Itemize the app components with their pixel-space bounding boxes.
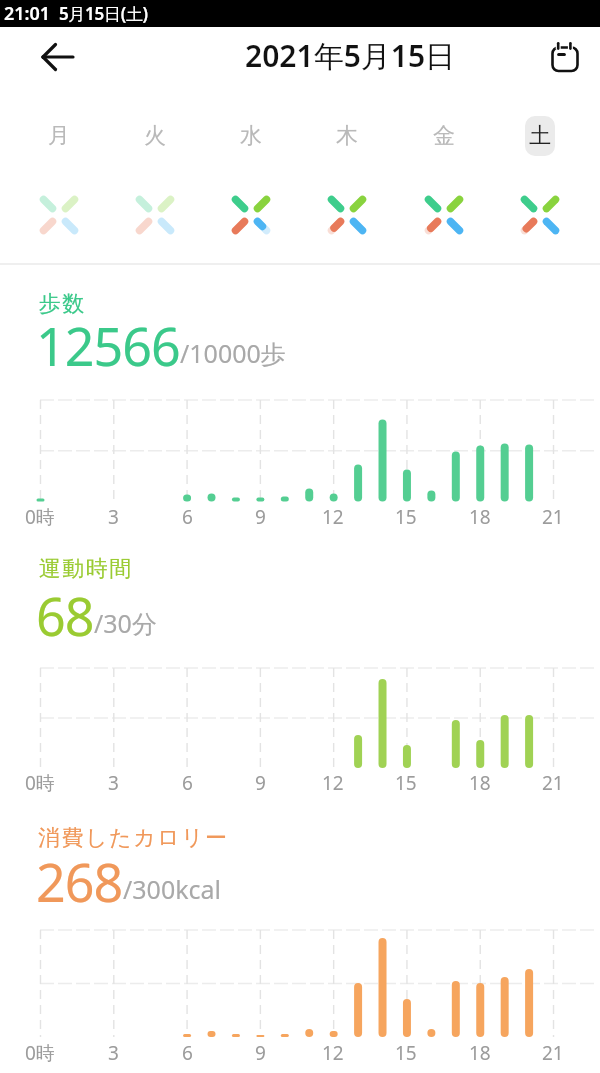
staticText: /30分 — [94, 606, 157, 640]
staticText: /300kcal — [123, 872, 222, 906]
staticText: 268 — [36, 846, 123, 917]
staticText: 0時 — [25, 770, 55, 796]
staticText: 12 — [322, 504, 344, 530]
staticText: 21:01 — [4, 1, 51, 26]
staticText: 15 — [395, 1040, 417, 1066]
button[interactable]: 木 — [299, 104, 395, 246]
staticText: 12 — [322, 770, 344, 796]
staticText: 2021年5月15日 — [245, 35, 456, 76]
button[interactable]: 月 — [11, 104, 107, 246]
staticText: 運動時間 — [38, 555, 132, 583]
staticText: 18 — [469, 504, 491, 530]
staticText: 18 — [469, 1040, 491, 1066]
staticText: 18 — [469, 770, 491, 796]
staticText: 3 — [108, 504, 119, 530]
button[interactable]: 火 — [107, 104, 203, 246]
staticText: 21 — [542, 504, 564, 530]
button[interactable]: 金 — [396, 104, 492, 246]
staticText: 水 — [240, 122, 262, 150]
staticText: 月 — [48, 122, 70, 150]
staticText: 15 — [395, 770, 417, 796]
staticText: 21 — [542, 770, 564, 796]
staticText: 土 — [529, 122, 551, 150]
staticText: 68 — [36, 580, 94, 651]
staticText: 歩数 — [38, 290, 85, 318]
staticText: 12566 — [36, 310, 180, 381]
staticText: 5月15日(土) — [59, 2, 148, 25]
staticText: 6 — [182, 770, 193, 796]
button[interactable]: 水 — [203, 104, 299, 246]
staticText: 21 — [542, 1040, 564, 1066]
staticText: 6 — [182, 1040, 193, 1066]
staticText: 3 — [108, 770, 119, 796]
staticText: 0時 — [25, 504, 55, 530]
staticText: 木 — [336, 122, 358, 150]
staticText: 火 — [144, 122, 166, 150]
staticText: 9 — [255, 770, 266, 796]
staticText: /10000歩 — [180, 336, 286, 370]
button[interactable] — [544, 36, 586, 78]
staticText: 9 — [255, 504, 266, 530]
staticText: 金 — [433, 122, 455, 150]
staticText: 15 — [395, 504, 417, 530]
button[interactable]: 土 — [492, 104, 588, 246]
staticText: 6 — [182, 504, 193, 530]
button[interactable] — [34, 37, 82, 77]
staticText: 12 — [322, 1040, 344, 1066]
staticText: 消費したカロリー — [38, 824, 229, 852]
staticText: 0時 — [25, 1040, 55, 1066]
staticText: 3 — [108, 1040, 119, 1066]
staticText: 9 — [255, 1040, 266, 1066]
